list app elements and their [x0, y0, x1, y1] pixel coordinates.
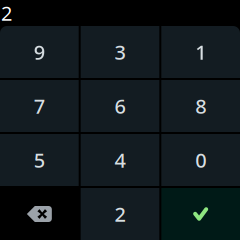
button[interactable]: 7: [0, 80, 79, 132]
staticText: 4: [114, 147, 125, 173]
staticText: 6: [114, 93, 125, 119]
staticText: 9: [34, 39, 45, 65]
button[interactable]: 0: [161, 134, 240, 186]
button[interactable]: Confirm: [161, 188, 240, 240]
staticText: 3: [114, 39, 125, 65]
button[interactable]: 1: [161, 26, 240, 78]
button[interactable]: 3: [81, 26, 159, 78]
staticText: 0: [195, 147, 206, 173]
button[interactable]: 6: [81, 80, 159, 132]
button[interactable]: 9: [0, 26, 79, 78]
staticText: 8: [195, 93, 206, 119]
button[interactable]: 5: [0, 134, 79, 186]
button[interactable]: 4: [81, 134, 159, 186]
staticText: 2: [1, 0, 12, 26]
button[interactable]: 2: [81, 188, 159, 240]
staticText: 2: [114, 201, 125, 227]
button[interactable]: 8: [161, 80, 240, 132]
staticText: 1: [195, 39, 206, 65]
staticText: 7: [34, 93, 45, 119]
staticText: 5: [34, 147, 45, 173]
button[interactable]: Delete: [0, 188, 79, 240]
